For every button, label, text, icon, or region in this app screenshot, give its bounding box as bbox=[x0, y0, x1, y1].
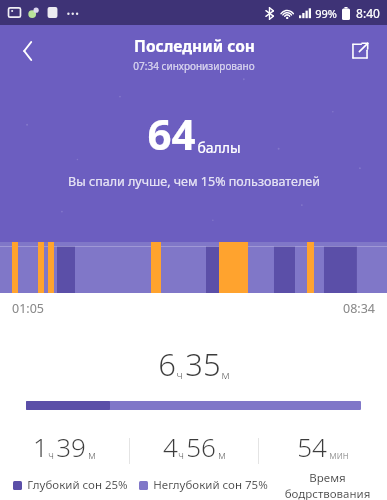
staticText: 99% bbox=[315, 6, 337, 21]
button[interactable]: Share bbox=[341, 32, 379, 70]
staticText: м bbox=[218, 448, 226, 462]
staticText: 07:34 синхронизировано bbox=[133, 59, 255, 73]
staticText: Вы спали лучше, чем 15% пользователей bbox=[68, 173, 320, 190]
staticText: 8:40 bbox=[356, 5, 380, 21]
staticText: баллы bbox=[197, 138, 241, 157]
staticText: 64 bbox=[147, 105, 196, 162]
staticText: мин bbox=[329, 448, 349, 462]
button[interactable]: Неглубокий сон 75% bbox=[139, 477, 268, 493]
staticText: 6 bbox=[158, 343, 176, 385]
button[interactable]: Глубокий сон 25% bbox=[13, 477, 128, 493]
staticText: ч bbox=[176, 367, 183, 382]
staticText: Неглубокий сон 75% bbox=[153, 477, 268, 493]
staticText: ч bbox=[178, 448, 184, 462]
staticText: м bbox=[88, 448, 96, 462]
staticText: Последний сон bbox=[134, 35, 255, 56]
staticText: м bbox=[221, 367, 230, 382]
button[interactable]: Back bbox=[9, 32, 47, 70]
staticText: ч bbox=[48, 448, 54, 462]
button[interactable]: 1 bbox=[0, 429, 129, 464]
button[interactable]: 4 bbox=[130, 429, 258, 464]
staticText: 54 bbox=[297, 429, 327, 464]
button[interactable]: 54 bbox=[259, 429, 387, 464]
staticText: Глубокий сон 25% bbox=[27, 477, 128, 493]
staticText: 39 bbox=[56, 429, 86, 464]
staticText: 35 bbox=[185, 343, 221, 385]
staticText: Время бодрствования bbox=[271, 470, 384, 500]
staticText: 1 bbox=[33, 429, 48, 464]
staticText: 01:05 bbox=[12, 300, 44, 317]
staticText: 4 bbox=[163, 429, 178, 464]
staticText: 08:34 bbox=[343, 300, 375, 317]
staticText: 56 bbox=[186, 429, 216, 464]
